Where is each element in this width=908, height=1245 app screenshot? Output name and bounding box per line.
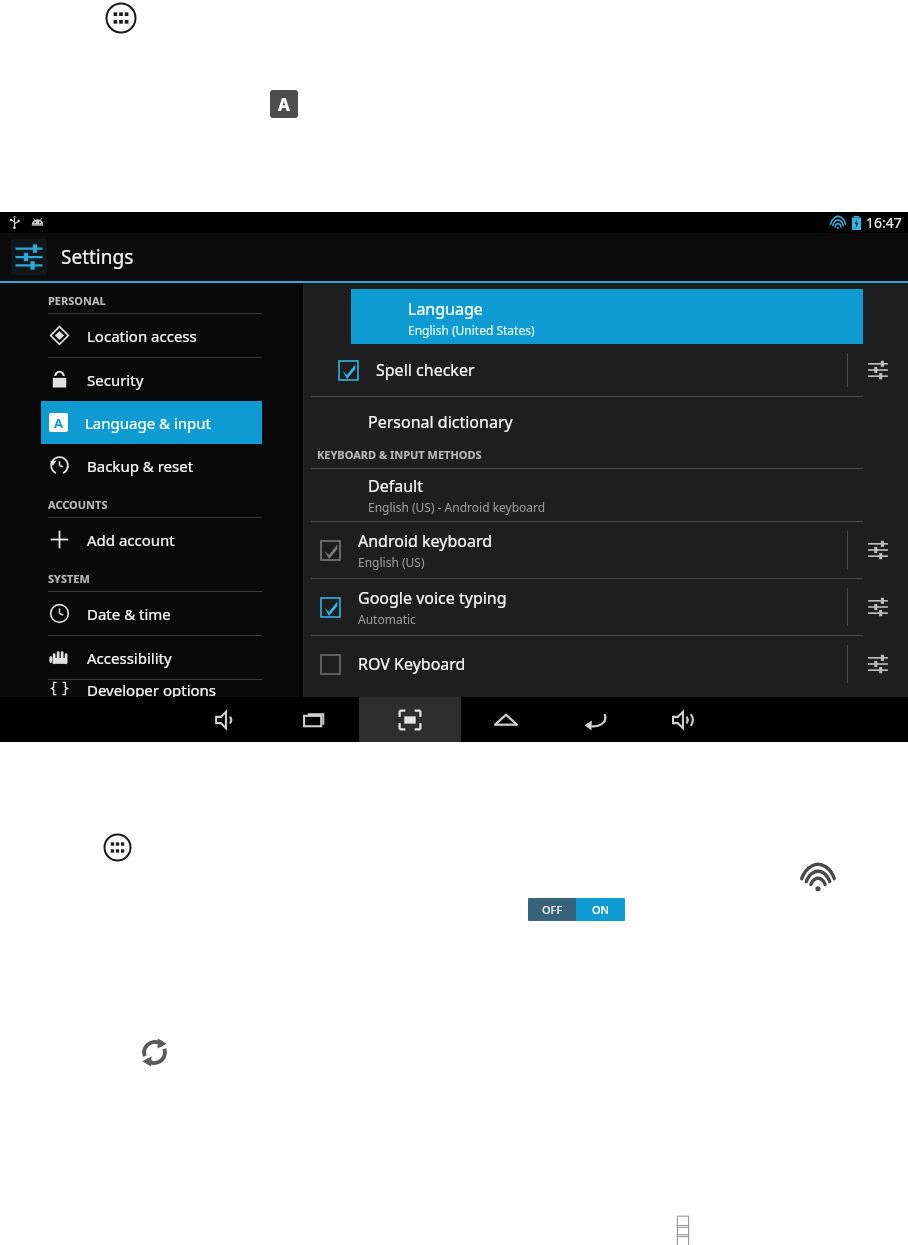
staticText: KEYBOARD & INPUT METHODS (317, 447, 482, 462)
staticText: English (United States) (408, 322, 535, 338)
button[interactable]: Volume down (181, 697, 270, 742)
button[interactable]: A (41, 401, 262, 444)
button[interactable]: Apps (103, 833, 132, 862)
staticText: Language (408, 298, 483, 320)
staticText: Language & input (85, 413, 211, 433)
button[interactable]: Screenshot (359, 697, 461, 742)
button[interactable]: Settings (0, 233, 908, 281)
staticText: Backup & reset (87, 456, 194, 476)
button[interactable]: Date & time (0, 592, 300, 635)
button[interactable]: Back (550, 697, 639, 742)
button[interactable] (321, 541, 340, 560)
button[interactable]: Location access (0, 314, 300, 357)
button[interactable]: Accessibility (0, 636, 300, 679)
staticText: Spell checker (376, 359, 847, 381)
staticText: Automatic (358, 611, 416, 627)
staticText: Developer options (87, 680, 217, 697)
staticText: ON (592, 902, 610, 917)
button[interactable]: Backup & reset (0, 444, 300, 487)
staticText: PERSONAL (48, 293, 106, 308)
staticText: SYSTEM (48, 571, 90, 586)
button[interactable]: More options (674, 1213, 692, 1245)
button[interactable]: Recents (270, 697, 359, 742)
button[interactable]: Spell checker (303, 344, 908, 396)
button[interactable]: Android keyboard settings (848, 522, 908, 578)
button[interactable]: Security (0, 358, 300, 401)
button[interactable]: Android keyboard (303, 522, 908, 578)
staticText: Android keyboard (358, 530, 493, 552)
button[interactable] (321, 598, 340, 617)
staticText: A (278, 93, 290, 116)
staticText: English (US) - Android keyboard (368, 499, 546, 515)
staticText: English (US) (358, 554, 425, 570)
button[interactable]: Apps (105, 2, 137, 34)
staticText: A (54, 414, 63, 432)
button[interactable]: Personal dictionary (303, 397, 908, 447)
staticText: Security (87, 370, 144, 390)
staticText: Google voice typing (358, 587, 507, 609)
button[interactable] (321, 655, 340, 674)
staticText: ACCOUNTS (48, 497, 108, 512)
staticText: OFF (542, 902, 563, 917)
button[interactable]: Spell checker settings (848, 344, 908, 396)
button[interactable]: ROV Keyboard (303, 636, 908, 692)
button[interactable]: Add account (0, 518, 300, 561)
staticText: Settings (61, 244, 134, 270)
button[interactable] (339, 361, 358, 380)
button[interactable]: Developer options (0, 680, 300, 697)
button[interactable]: Language (351, 289, 863, 344)
staticText: Date & time (87, 604, 171, 624)
button[interactable]: Home (461, 697, 550, 742)
button[interactable]: Language (270, 90, 298, 118)
staticText: ROV Keyboard (358, 653, 466, 675)
staticText: 16:47 (866, 213, 902, 232)
button[interactable]: Google voice typing (303, 579, 908, 635)
staticText: Location access (87, 326, 197, 346)
button[interactable]: ROV Keyboard settings (848, 636, 908, 692)
staticText: Personal dictionary (368, 411, 513, 433)
button[interactable]: Wi-Fi (800, 867, 836, 893)
staticText: Default (368, 475, 423, 497)
staticText: Accessibility (87, 648, 172, 668)
button[interactable]: OFF (528, 898, 625, 921)
button[interactable]: Volume up (639, 697, 728, 742)
button[interactable]: Sync (140, 1038, 169, 1067)
staticText: Add account (87, 530, 175, 550)
button[interactable]: Google voice typing settings (848, 579, 908, 635)
button[interactable]: Default (303, 469, 908, 521)
